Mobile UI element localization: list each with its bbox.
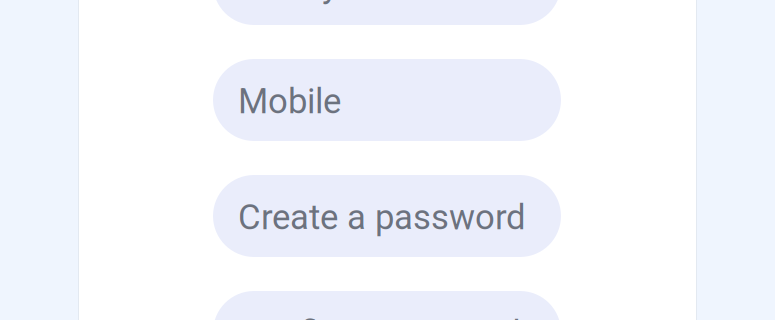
button[interactable]: Create a password	[213, 175, 561, 257]
staticText: Create a password	[238, 197, 526, 238]
button[interactable]: Family name	[213, 0, 561, 25]
staticText: Family name	[238, 0, 433, 6]
staticText: Mobile	[238, 81, 341, 122]
staticText: Confirm password	[238, 313, 521, 320]
button[interactable]: Confirm password	[213, 291, 561, 320]
button[interactable]: Mobile	[213, 59, 561, 141]
